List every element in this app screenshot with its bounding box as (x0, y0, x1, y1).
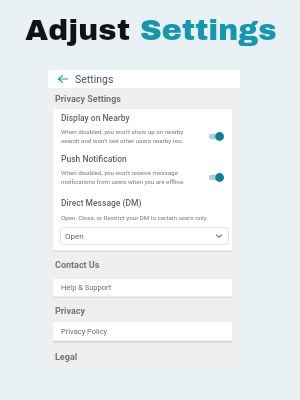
staticText: Legal (55, 352, 78, 363)
button[interactable]: Display on Nearby (53, 109, 232, 250)
staticText: Help & Support (61, 283, 112, 292)
staticText: Privacy (55, 306, 86, 317)
staticText: Privacy Policy (61, 327, 108, 336)
staticText: Settings (75, 73, 114, 85)
button[interactable]: Privacy Policy (53, 322, 232, 340)
other: Back (58, 74, 68, 84)
button[interactable]: Back (48, 70, 240, 88)
other: Expand (216, 233, 222, 239)
button[interactable]: Open (60, 227, 229, 245)
staticText: Privacy Settings (55, 94, 121, 105)
staticText: Display on Nearby (61, 113, 130, 123)
staticText: Adjust Settings (25, 14, 277, 47)
staticText: Contact Us (55, 260, 100, 271)
button[interactable]: Toggle setting (209, 132, 224, 141)
staticText: When disabled, you won't show up on near… (61, 128, 205, 144)
staticText: Direct Message (DM) (61, 198, 142, 208)
button[interactable]: Help & Support (53, 279, 232, 296)
staticText: Open, Close, or Restrict your DM to cert… (61, 214, 208, 221)
staticText: Open (65, 232, 216, 241)
staticText: When disabled, you won't receive message… (61, 169, 205, 185)
staticText: Push Notification (61, 154, 127, 164)
button[interactable]: Toggle setting (209, 173, 224, 182)
